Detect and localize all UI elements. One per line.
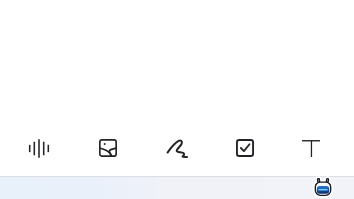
button[interactable]: Checkboxes bbox=[223, 126, 267, 170]
button[interactable]: Text format bbox=[289, 126, 333, 170]
button[interactable]: Add image bbox=[86, 126, 130, 170]
button[interactable]: Drawing bbox=[155, 127, 199, 171]
button[interactable]: Assistant bbox=[314, 178, 332, 196]
button[interactable]: Record audio bbox=[17, 126, 61, 170]
